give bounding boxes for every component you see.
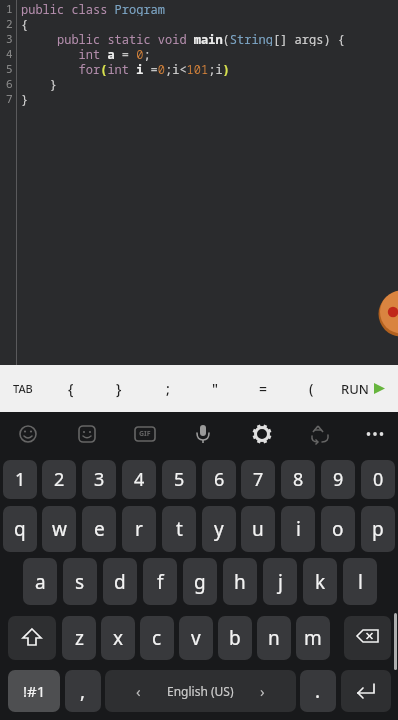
button[interactable]: q [3,506,37,552]
button[interactable]: u [241,506,275,552]
staticText: m [304,625,322,651]
staticText: " [212,379,219,398]
staticText: 6 [6,76,13,91]
button[interactable] [8,616,56,660]
button[interactable]: k [303,558,337,605]
button[interactable]: 2 [42,460,76,499]
staticText: c [152,625,162,651]
button[interactable]: i [281,506,315,552]
button[interactable]: = [245,365,281,412]
staticText: › [260,681,265,701]
staticText: 5 [174,467,185,492]
button[interactable]: c [140,616,174,660]
staticText: b [229,625,241,651]
staticText: public class Program [21,1,166,16]
button[interactable]: RUN [332,365,394,412]
button[interactable]: } [101,365,137,412]
button[interactable]: j [263,558,297,605]
button[interactable] [124,414,166,457]
staticText: v [191,625,201,651]
staticText: i [296,516,301,542]
staticText: r [135,516,143,542]
staticText: u [252,516,264,542]
button[interactable]: l [343,558,377,605]
staticText: TAB [13,381,33,396]
staticText: } [21,91,29,106]
staticText: } [21,76,58,91]
staticText: 4 [6,46,13,61]
button[interactable]: m [296,616,330,660]
button[interactable]: . [300,670,336,712]
button[interactable]: TAB [4,365,42,412]
staticText: public static void main(String[] args) { [21,31,346,46]
staticText: = [259,379,268,398]
staticText: . [315,678,321,704]
button[interactable] [66,414,108,457]
staticText: 1 [6,1,13,16]
button[interactable]: a [23,558,57,605]
staticText: 6 [214,467,225,492]
staticText: 9 [333,467,344,492]
staticText: ; [166,379,170,398]
button[interactable]: 8 [281,460,315,499]
button[interactable]: 1 [3,460,37,499]
button[interactable]: 3 [82,460,116,499]
staticText: n [268,625,280,651]
button[interactable]: ‹ [105,670,296,712]
button[interactable]: s [63,558,97,605]
button[interactable]: , [65,670,101,712]
button[interactable]: ; [150,365,186,412]
button[interactable]: 6 [202,460,236,499]
button[interactable]: t [162,506,196,552]
button[interactable]: 7 [241,460,275,499]
staticText: q [14,516,26,542]
staticText: y [214,516,224,542]
button[interactable]: f [143,558,177,605]
button[interactable]: z [62,616,96,660]
button[interactable] [182,414,224,457]
staticText: t [176,516,183,542]
button[interactable]: o [321,506,355,552]
staticText: f [157,569,164,595]
staticText: int a = 0; [21,46,151,61]
button[interactable]: 9 [321,460,355,499]
button[interactable]: 5 [162,460,196,499]
button[interactable]: y [202,506,236,552]
button[interactable]: n [257,616,291,660]
button[interactable] [341,670,391,712]
button[interactable] [356,414,398,457]
button[interactable]: p [361,506,395,552]
button[interactable] [344,616,391,660]
button[interactable] [298,414,340,457]
staticText: for(int i =0;i<101;i) [21,61,230,76]
button[interactable]: h [223,558,257,605]
button[interactable]: x [101,616,135,660]
staticText: x [113,625,124,651]
staticText: d [114,569,126,595]
staticText: { [68,379,74,398]
button[interactable]: 0 [361,460,395,499]
staticText: } [116,379,122,398]
staticText: 3 [94,467,105,492]
button[interactable] [8,414,50,457]
button[interactable]: r [122,506,156,552]
button[interactable]: g [183,558,217,605]
button[interactable]: { [53,365,89,412]
button[interactable]: v [179,616,213,660]
staticText: l [358,569,363,595]
staticText: , [80,678,86,704]
button[interactable]: d [103,558,137,605]
button[interactable] [240,414,282,457]
button[interactable]: w [42,506,76,552]
button[interactable]: ( [293,365,329,412]
button[interactable]: e [82,506,116,552]
button[interactable]: 4 [122,460,156,499]
staticText: 7 [6,91,13,106]
button[interactable]: !#1 [8,670,60,712]
staticText: 1 [15,467,26,492]
button[interactable]: b [218,616,252,660]
staticText: { [21,16,29,31]
staticText: p [372,516,384,542]
button[interactable]: " [197,365,233,412]
staticText: ( [309,379,314,398]
